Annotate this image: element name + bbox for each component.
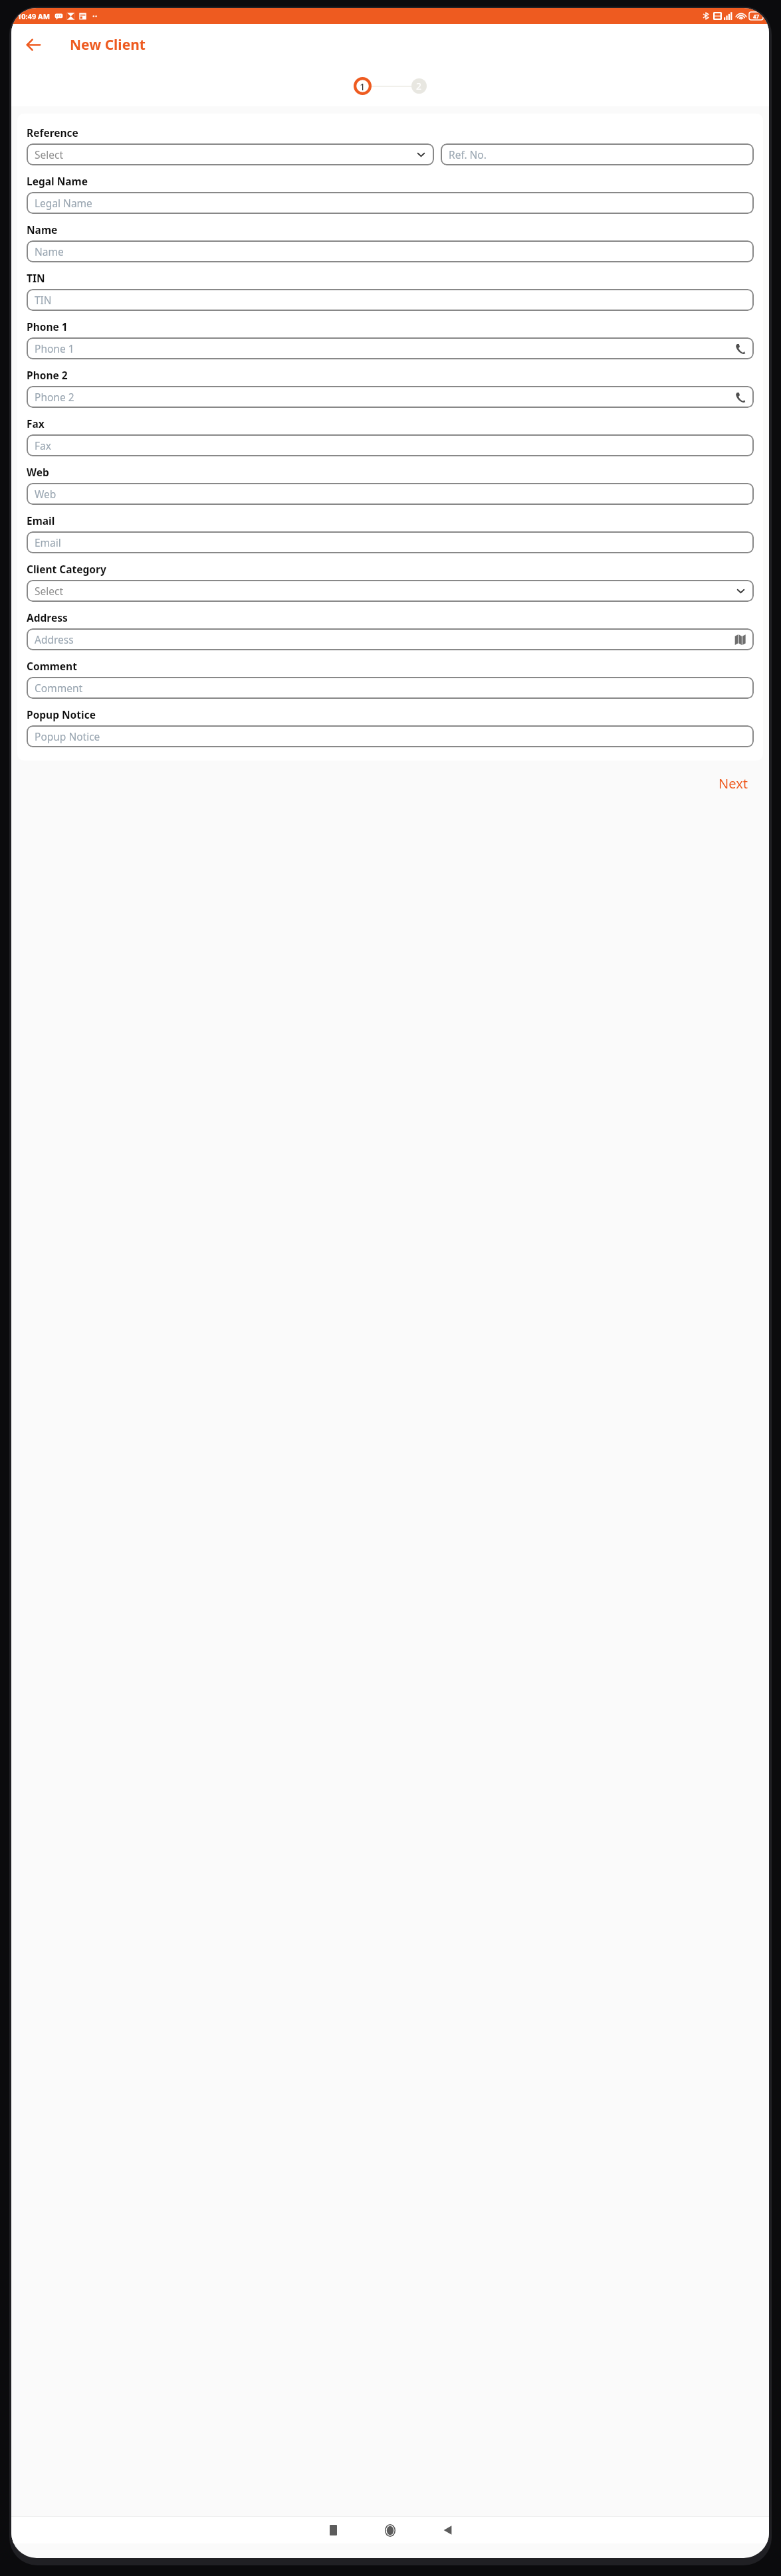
button[interactable]: Name (27, 240, 754, 262)
staticText: Fax (27, 416, 45, 430)
staticText: Next (719, 775, 748, 792)
button[interactable]: Select (27, 143, 434, 165)
button[interactable]: Back (21, 32, 46, 57)
staticText: Phone 1 (35, 341, 734, 355)
button[interactable]: Recents (318, 2517, 348, 2543)
button[interactable]: Ref. No. (441, 143, 754, 165)
button[interactable]: TIN (27, 289, 754, 311)
staticText: Legal Name (27, 174, 88, 188)
button[interactable]: Email (27, 531, 754, 553)
staticText: New Client (70, 35, 146, 54)
staticText: Email (27, 513, 55, 527)
staticText: Email (35, 535, 746, 549)
staticText: Web (35, 487, 746, 501)
button[interactable]: Fax (27, 434, 754, 456)
staticText: Fax (35, 438, 746, 452)
button[interactable]: Web (27, 483, 754, 505)
staticText: Phone 2 (35, 390, 734, 404)
staticText: Popup Notice (35, 729, 746, 743)
button[interactable]: Home (376, 2517, 405, 2543)
button[interactable]: Address (27, 628, 754, 650)
button[interactable]: Back (433, 2517, 462, 2543)
button[interactable]: Comment (27, 677, 754, 699)
button[interactable]: Phone 2 (27, 386, 754, 408)
staticText: Name (27, 223, 58, 236)
staticText: Address (27, 610, 68, 624)
staticText: Web (27, 465, 49, 479)
staticText: Popup Notice (27, 707, 96, 721)
staticText: Ref. No. (449, 147, 746, 161)
staticText: Select (35, 584, 736, 598)
staticText: 1 (360, 80, 366, 93)
staticText: Select (35, 147, 416, 161)
staticText: TIN (35, 293, 746, 307)
button[interactable]: Phone 1 (27, 337, 754, 359)
staticText: Legal Name (35, 196, 746, 210)
staticText: Address (35, 632, 734, 646)
button[interactable]: Step 1 (354, 77, 372, 95)
button[interactable]: Legal Name (27, 192, 754, 214)
staticText: TIN (27, 271, 45, 285)
staticText: 2 (416, 80, 422, 92)
staticText: Phone 2 (27, 368, 68, 382)
button[interactable]: Popup Notice (27, 725, 754, 747)
staticText: 47 (753, 13, 760, 20)
button[interactable]: Next (712, 769, 754, 798)
staticText: Phone 1 (27, 320, 68, 333)
button[interactable]: Select (27, 580, 754, 602)
staticText: Comment (27, 659, 77, 673)
staticText: Client Category (27, 562, 106, 576)
staticText: Name (35, 244, 746, 258)
staticText: Reference (27, 126, 78, 139)
staticText: Comment (35, 681, 746, 695)
button[interactable]: Step 2 (411, 78, 427, 94)
staticText: 10:49 AM (17, 11, 51, 21)
